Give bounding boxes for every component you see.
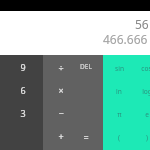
staticText: log (142, 87, 150, 96)
button[interactable]: DEL (73, 55, 98, 78)
staticText: e (145, 110, 149, 119)
staticText: 9 (20, 61, 26, 73)
button[interactable]: cos (139, 57, 150, 80)
button[interactable]: × (43, 78, 78, 101)
staticText: sin (115, 64, 124, 73)
staticText: − (58, 107, 64, 119)
button[interactable]: e (139, 103, 150, 126)
staticText: × (58, 84, 64, 96)
button[interactable]: ÷ (43, 55, 78, 78)
staticText: 466.666 (103, 31, 148, 47)
staticText: ÷ (58, 61, 64, 73)
button[interactable]: ) (139, 126, 150, 149)
button[interactable]: ( (103, 126, 135, 149)
button[interactable]: 3 (1, 101, 44, 124)
button[interactable]: sin (103, 57, 135, 80)
button[interactable]: + (43, 124, 78, 147)
staticText: ( (118, 133, 120, 142)
staticText: + (58, 130, 64, 142)
staticText: π (117, 110, 122, 119)
staticText: DEL (80, 62, 92, 71)
staticText: = (83, 131, 89, 143)
staticText: 6 (20, 84, 26, 96)
button[interactable]: π (103, 103, 135, 126)
button[interactable]: − (43, 101, 78, 124)
button[interactable]: 9 (1, 55, 44, 78)
button[interactable]: ln (103, 80, 135, 103)
staticText: 3 (20, 107, 26, 119)
button[interactable]: log (139, 80, 150, 103)
staticText: ln (116, 87, 122, 96)
button[interactable]: = (73, 125, 98, 148)
button[interactable]: 6 (1, 78, 44, 101)
staticText: 56 (135, 16, 149, 32)
staticText: cos (141, 64, 150, 73)
staticText: ) (146, 133, 148, 142)
